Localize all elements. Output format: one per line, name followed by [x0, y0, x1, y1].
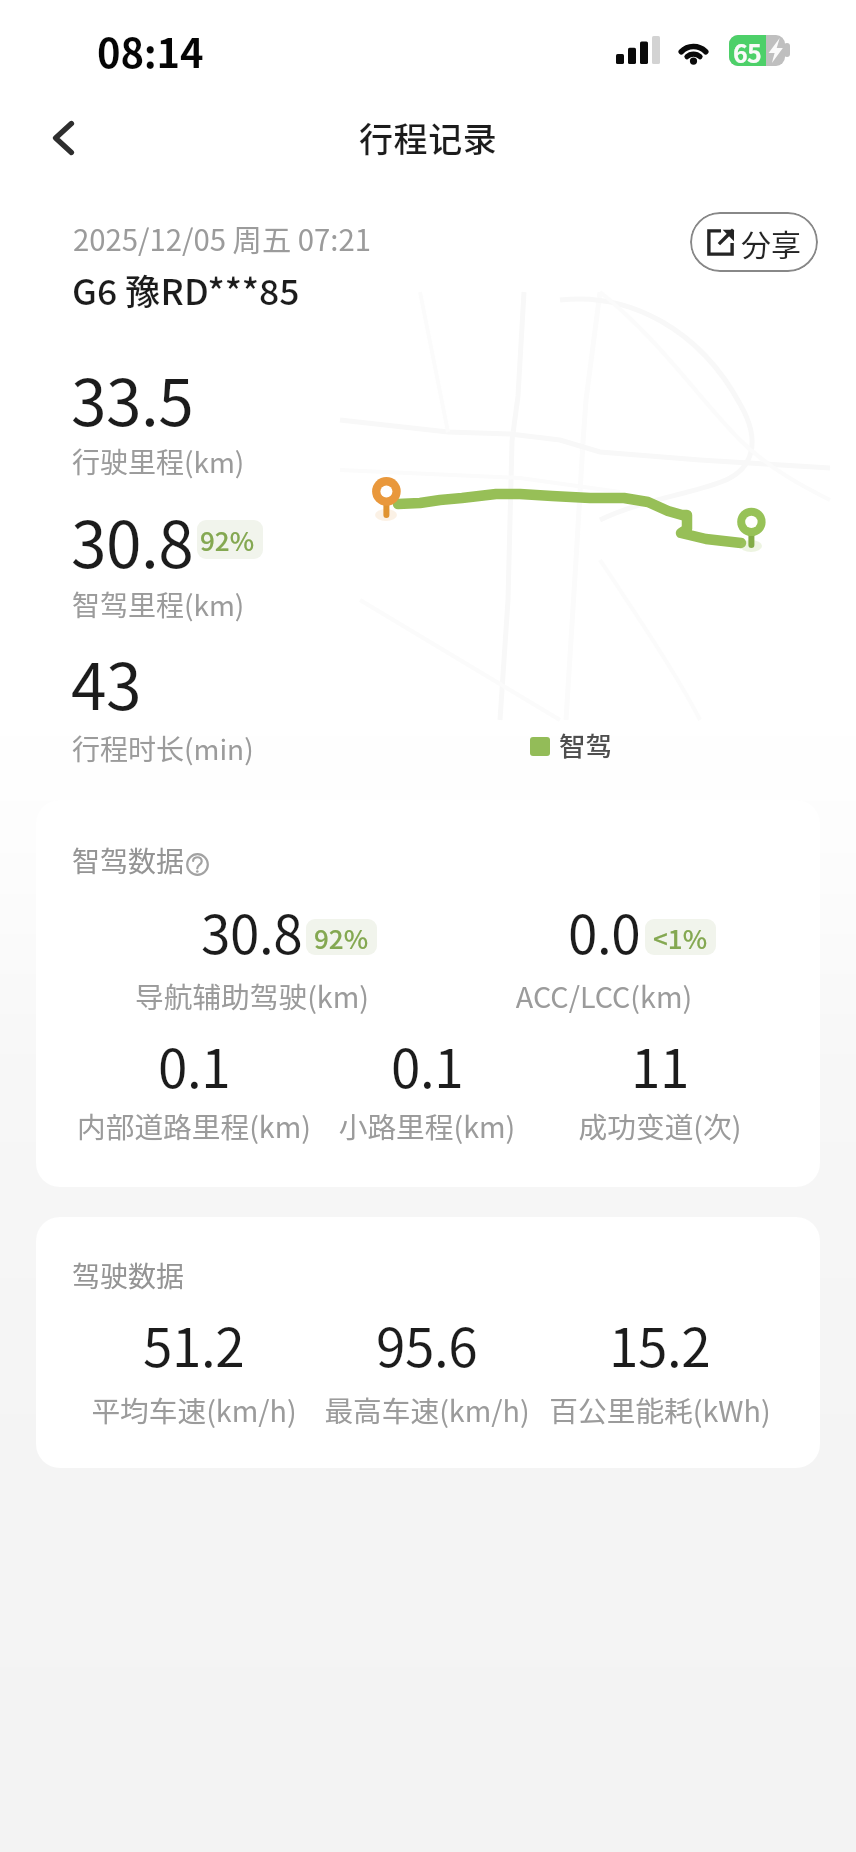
- staticText: 导航辅助驾驶(km): [52, 975, 452, 1017]
- staticText: 08:14: [97, 22, 204, 80]
- staticText: 百公里能耗(kWh): [460, 1389, 856, 1431]
- button[interactable]: Help: about smart-driving data: [186, 853, 209, 876]
- staticText: 95.6: [376, 1306, 478, 1383]
- staticText: 行驶里程(km): [72, 441, 245, 482]
- staticText: 30.8: [71, 494, 194, 587]
- staticText: 最高车速(km/h): [227, 1389, 627, 1431]
- staticText: 15.2: [609, 1306, 711, 1383]
- staticText: 智驾数据: [72, 840, 185, 881]
- staticText: 内部道路里程(km): [0, 1105, 394, 1147]
- staticText: 平均车速(km/h): [0, 1389, 394, 1431]
- staticText: 65: [733, 34, 761, 65]
- button[interactable]: 分享: [690, 212, 818, 272]
- staticText: 33.5: [71, 352, 194, 445]
- staticText: 智驾里程(km): [72, 584, 245, 625]
- staticText: 92%: [200, 521, 255, 559]
- staticText: 行程记录: [359, 113, 498, 162]
- staticText: 驾驶数据: [72, 1255, 185, 1296]
- button[interactable]: Back: [30, 105, 96, 171]
- staticText: <1%: [653, 919, 708, 955]
- staticText: 行程时长(min): [72, 728, 254, 769]
- staticText: ACC/LCC(km): [404, 975, 804, 1017]
- staticText: 51.2: [143, 1306, 245, 1383]
- staticText: 0.1: [391, 1027, 464, 1104]
- staticText: 2025/12/05 周五 07:21: [73, 217, 371, 259]
- staticText: 分享: [741, 221, 801, 264]
- staticText: 92%: [314, 919, 369, 955]
- staticText: 智驾: [559, 725, 612, 763]
- staticText: 0.1: [158, 1027, 231, 1104]
- staticText: 0.0: [568, 893, 641, 970]
- staticText: 小路里程(km): [227, 1105, 627, 1147]
- staticText: 成功变道(次): [460, 1105, 856, 1147]
- staticText: 11: [631, 1027, 690, 1104]
- staticText: 30.8: [201, 893, 303, 970]
- staticText: 43: [71, 636, 142, 729]
- staticText: G6 豫RD***85: [72, 264, 300, 315]
